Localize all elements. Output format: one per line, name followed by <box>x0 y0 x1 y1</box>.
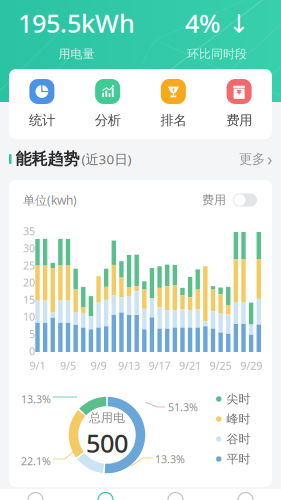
staticText: 9/9 <box>90 358 106 373</box>
staticText: 51.3% <box>168 400 198 414</box>
staticText: (近30日) <box>81 150 131 168</box>
button[interactable]: 排名 <box>140 69 206 139</box>
staticText: 更多 <box>239 151 265 167</box>
staticText: 25 <box>23 258 35 272</box>
staticText: 30 <box>23 241 35 255</box>
staticText: 500 <box>86 426 128 460</box>
staticText: 9/17 <box>149 358 171 373</box>
button[interactable]: 费用 <box>206 69 272 139</box>
staticText: 用电量 <box>58 47 94 61</box>
staticText: 4% ↓ <box>185 6 249 40</box>
staticText: 13.3% <box>155 452 185 466</box>
button[interactable]: 分析 <box>75 69 141 139</box>
staticText: 0 <box>29 344 35 358</box>
staticText: 9/25 <box>210 358 232 373</box>
button[interactable]: 首页 <box>0 489 70 500</box>
button[interactable]: 统计 <box>9 69 75 139</box>
staticText: 费用 <box>226 112 252 128</box>
staticText: 20 <box>23 275 35 289</box>
staticText: 22.1% <box>21 454 51 468</box>
staticText: 统计 <box>29 112 55 128</box>
staticText: 9/29 <box>240 358 262 373</box>
staticText: 费用 <box>202 193 226 207</box>
staticText: 能耗趋势 <box>15 149 79 169</box>
staticText: 总用电 <box>89 410 125 425</box>
staticText: 195.5kWh <box>18 6 135 40</box>
staticText: 单位(kwh) <box>23 192 77 208</box>
button[interactable]: 统计 <box>70 489 140 500</box>
staticText: 分析 <box>95 112 121 128</box>
staticText: › <box>267 147 272 170</box>
staticText: 10 <box>23 310 35 324</box>
staticText: 5 <box>29 327 35 341</box>
staticText: 峰时 <box>226 412 250 426</box>
staticText: 排名 <box>160 112 186 128</box>
staticText: 平时 <box>226 452 250 466</box>
button[interactable]: 更多 <box>239 148 272 170</box>
staticText: 13.3% <box>21 392 51 406</box>
staticText: 9/13 <box>118 358 140 373</box>
staticText: 尖时 <box>226 392 250 406</box>
button[interactable]: 我的 <box>210 489 280 500</box>
staticText: 9/5 <box>60 358 76 373</box>
staticText: 35 <box>23 224 35 238</box>
staticText: 15 <box>23 292 35 307</box>
button[interactable]: 消息 <box>140 489 210 500</box>
staticText: 环比同时段 <box>187 47 247 61</box>
staticText: 谷时 <box>226 432 250 446</box>
staticText: 9/21 <box>179 358 201 373</box>
staticText: 9/1 <box>29 358 45 373</box>
button[interactable]: 费用开关 <box>233 193 257 207</box>
